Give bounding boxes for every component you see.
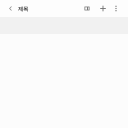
button[interactable]: 제목 xyxy=(15,5,28,12)
button[interactable]: View mode xyxy=(78,0,96,17)
button[interactable]: Back xyxy=(6,0,15,17)
button[interactable]: Add xyxy=(96,0,110,17)
staticText: 제목 xyxy=(18,6,28,12)
button[interactable]: More options xyxy=(110,0,122,17)
